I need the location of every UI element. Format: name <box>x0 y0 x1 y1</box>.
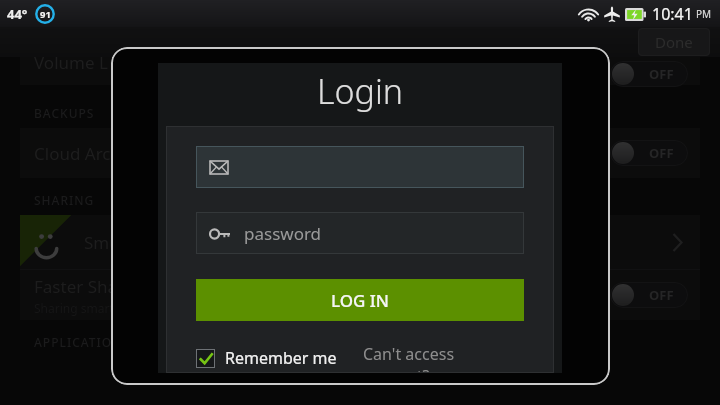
staticText: password <box>244 222 322 245</box>
button[interactable]: Remember me <box>196 347 337 369</box>
staticText: 91 <box>40 8 51 21</box>
button[interactable]: Volume L <box>20 57 700 85</box>
button[interactable]: Cloud Archive <box>20 128 700 178</box>
staticText: Remember me <box>225 347 337 369</box>
staticText: Can't access account? <box>363 343 524 373</box>
staticText: LOG IN <box>331 289 390 312</box>
staticText: Login <box>158 68 562 114</box>
staticText: PM <box>696 7 712 21</box>
button[interactable]: Toggle off <box>610 140 688 166</box>
staticText: Sharing smarter, not harder <box>34 300 190 316</box>
staticText: SHARING <box>34 192 95 208</box>
button[interactable]: SmugMug <box>20 215 700 269</box>
button[interactable]: Can't access account? <box>363 343 524 373</box>
staticText: Volume L <box>34 51 108 74</box>
staticText: SmugMug <box>84 231 167 254</box>
button[interactable]: Toggle off <box>610 61 688 87</box>
staticText: APPLICATION <box>34 334 123 350</box>
staticText: Done <box>655 32 693 52</box>
staticText: OFF <box>649 65 674 83</box>
button[interactable]: password <box>196 212 524 254</box>
button[interactable]: Toggle off <box>610 282 688 308</box>
button[interactable]: LOG IN <box>196 279 524 321</box>
button[interactable]: Done <box>638 28 710 56</box>
staticText: Cloud Archive <box>34 142 144 165</box>
staticText: 44° <box>7 5 28 23</box>
button[interactable]: Faster Sharing <box>20 270 700 320</box>
staticText: OFF <box>649 286 674 304</box>
button[interactable] <box>196 146 524 188</box>
staticText: OFF <box>649 144 674 162</box>
staticText: BACKUPS <box>34 105 95 121</box>
staticText: 10:41 <box>652 3 693 25</box>
staticText: Faster Sharing <box>34 275 150 298</box>
